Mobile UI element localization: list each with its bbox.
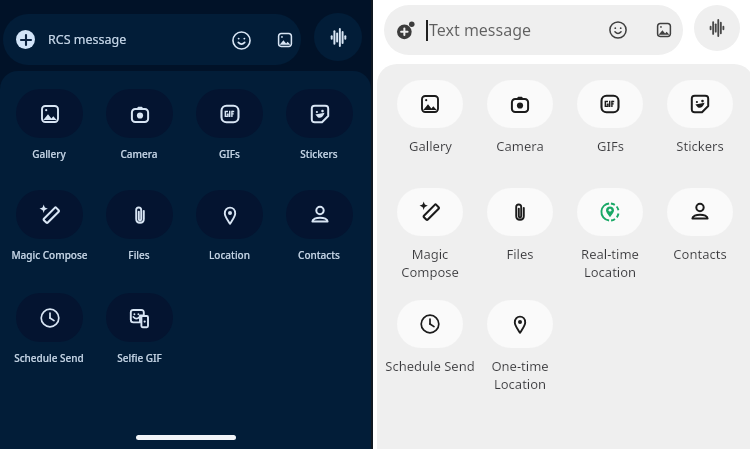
button[interactable]: Magic Compose xyxy=(4,190,94,262)
button[interactable]: Camera xyxy=(475,80,565,155)
button[interactable]: Emoji xyxy=(229,28,253,52)
button[interactable]: Gallery xyxy=(385,80,475,155)
staticText: Stickers xyxy=(676,137,724,155)
button[interactable]: Emoji xyxy=(606,18,630,42)
button[interactable]: Stickers xyxy=(274,89,364,161)
staticText: Magic Compose xyxy=(401,245,459,281)
staticText: Selfie GIF xyxy=(117,351,162,365)
button[interactable]: Real-time Location xyxy=(565,188,655,281)
button[interactable]: Stickers xyxy=(655,80,745,155)
staticText: Gallery xyxy=(32,147,66,161)
button[interactable]: GIFs xyxy=(565,80,655,155)
button[interactable]: Gallery xyxy=(652,18,676,42)
staticText: RCS message xyxy=(48,31,127,48)
button[interactable]: GIFs xyxy=(184,89,274,161)
staticText: GIFs xyxy=(597,137,624,155)
staticText: Real-time Location xyxy=(581,245,639,281)
button[interactable]: Files xyxy=(475,188,565,263)
button[interactable]: Voice message xyxy=(694,5,740,51)
button[interactable]: Add attachment xyxy=(3,14,301,65)
button[interactable]: Gallery xyxy=(273,28,297,52)
button[interactable]: Add attachment xyxy=(16,30,35,49)
staticText: Contacts xyxy=(298,248,340,262)
staticText: Files xyxy=(128,248,150,262)
staticText: Stickers xyxy=(300,147,338,161)
button[interactable]: Schedule Send xyxy=(4,293,94,365)
button[interactable]: One-time Location xyxy=(475,300,565,393)
button[interactable]: Files xyxy=(94,190,184,262)
staticText: Location xyxy=(209,248,250,262)
button[interactable]: Voice message xyxy=(314,13,362,61)
staticText: Gallery xyxy=(409,137,452,155)
button[interactable]: Contacts xyxy=(655,188,745,263)
button[interactable]: Schedule Send xyxy=(385,300,475,375)
button[interactable]: Add attachment xyxy=(394,19,416,41)
staticText: GIFs xyxy=(219,147,240,161)
button[interactable]: Location xyxy=(184,190,274,262)
button[interactable]: Selfie GIF xyxy=(94,293,184,365)
staticText: Files xyxy=(506,245,534,263)
staticText: Camera xyxy=(120,147,158,161)
staticText: One-time Location xyxy=(491,357,549,393)
staticText: Schedule Send xyxy=(14,351,84,365)
button[interactable]: Contacts xyxy=(274,190,364,262)
staticText: Magic Compose xyxy=(11,248,88,262)
button[interactable]: Magic Compose xyxy=(385,188,475,281)
staticText: Schedule Send xyxy=(385,357,475,375)
button[interactable]: Gallery xyxy=(4,89,94,161)
staticText: Text message xyxy=(429,19,532,41)
staticText: Contacts xyxy=(673,245,727,263)
staticText: Camera xyxy=(496,137,544,155)
button[interactable]: Add attachment xyxy=(384,5,683,55)
button[interactable]: Camera xyxy=(94,89,184,161)
